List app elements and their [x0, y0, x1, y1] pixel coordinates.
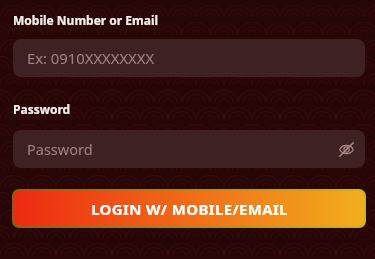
staticText: Ex: 0910XXXXXXXX — [27, 48, 155, 68]
button[interactable]: Ex: 0910XXXXXXXX — [13, 39, 365, 77]
button[interactable]: Password — [13, 130, 365, 168]
staticText: Password — [27, 139, 93, 159]
staticText: Mobile Number or Email — [13, 12, 159, 28]
staticText: Password — [13, 101, 71, 117]
button[interactable]: LOGIN W/ MOBILE/EMAIL — [14, 191, 364, 226]
staticText: LOGIN W/ MOBILE/EMAIL — [91, 199, 288, 219]
button[interactable]: Show password — [333, 136, 359, 162]
